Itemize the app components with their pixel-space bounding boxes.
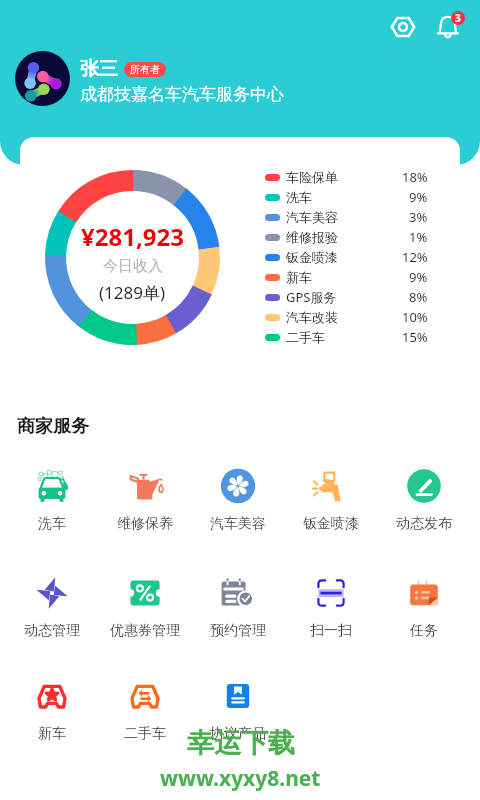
staticText: 新车 [286,269,312,285]
button[interactable]: 汽车改装 [265,307,428,327]
button[interactable]: 动态管理 [6,573,98,676]
staticText: 动态管理 [24,622,80,640]
staticText: 汽车美容 [286,209,338,225]
button[interactable]: 新车 [265,267,428,287]
staticText: 扫一扫 [310,622,352,640]
button[interactable]: 钣金喷漆 [265,247,428,267]
staticText: 10% [402,308,428,326]
staticText: 张三 [80,57,118,81]
staticText: 钣金喷漆 [286,249,338,265]
staticText: 8% [409,288,428,306]
staticText: 18% [402,168,428,186]
staticText: 任务 [410,622,438,640]
staticText: www.xyxy8.net [160,764,321,793]
button[interactable]: 维修保养 [98,466,191,573]
staticText: 1% [409,228,428,246]
staticText: 商家服务 [17,415,89,438]
button[interactable]: 优惠券管理 [98,573,191,676]
button[interactable]: Settings [386,10,420,44]
staticText: 汽车美容 [210,515,266,533]
button[interactable]: 二手车 [265,327,428,347]
button[interactable]: 钣金喷漆 [284,466,377,573]
staticText: 15% [402,328,428,346]
button[interactable]: 汽车美容 [191,466,284,573]
button[interactable]: 维修报验 [265,227,428,247]
staticText: (1289单) [99,281,166,304]
staticText: 今日收入 [103,257,163,276]
staticText: 3 [455,11,461,25]
staticText: 钣金喷漆 [303,515,359,533]
staticText: 12% [402,248,428,266]
staticText: 3% [409,208,428,226]
button[interactable]: 动态发布 [377,466,470,573]
staticText: 协议产品 [210,725,266,743]
button[interactable]: 新车 [6,676,98,779]
staticText: 洗车 [38,515,66,533]
staticText: 9% [409,188,428,206]
staticText: 9% [409,268,428,286]
staticText: 优惠券管理 [110,622,180,640]
button[interactable]: GPS服务 [265,287,428,307]
staticText: GPS服务 [286,288,337,306]
staticText: 二手车 [286,329,325,345]
staticText: 新车 [38,725,66,743]
staticText: 汽车改装 [286,309,338,325]
staticText: 成都技嘉名车汽车服务中心 [80,84,284,105]
button[interactable]: 协议产品 [191,676,284,779]
staticText: 动态发布 [396,515,452,533]
staticText: 洗车 [286,189,312,205]
staticText: 幸运下载 [187,726,295,760]
button[interactable]: Notifications [430,7,468,45]
button[interactable]: 二手车 [98,676,191,779]
staticText: 二手车 [124,725,166,743]
button[interactable]: 扫一扫 [284,573,377,676]
staticText: 维修保养 [117,515,173,533]
button[interactable]: 汽车美容 [265,207,428,227]
staticText: 维修报验 [286,229,338,245]
staticText: ¥281,923 [81,220,184,253]
button[interactable]: 洗车 [265,187,428,207]
button[interactable]: 任务 [377,573,470,676]
button[interactable]: 预约管理 [191,573,284,676]
button[interactable]: 洗车 [6,466,98,573]
staticText: 所有者 [130,63,160,76]
staticText: 车险保单 [286,169,338,185]
button[interactable]: 车险保单 [265,167,428,187]
staticText: 预约管理 [210,622,266,640]
